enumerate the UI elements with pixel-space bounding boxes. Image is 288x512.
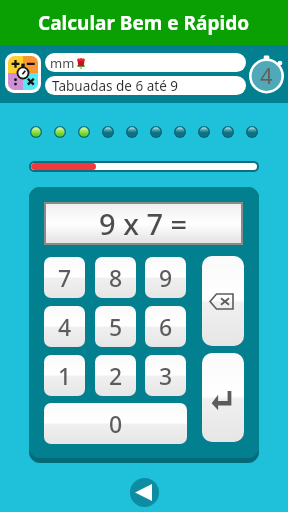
button[interactable]: 1 <box>44 355 85 396</box>
staticText: 6 <box>159 311 173 342</box>
staticText: 7 <box>58 262 72 293</box>
button[interactable]: 2 <box>95 355 136 396</box>
button[interactable]: 7 <box>44 257 85 298</box>
staticText: 3 <box>159 360 173 391</box>
staticText: 2 <box>109 360 123 391</box>
button[interactable]: 0 <box>44 403 187 444</box>
button[interactable]: 9 <box>145 257 186 298</box>
button[interactable]: mm <box>45 53 246 72</box>
button[interactable]: 3 <box>145 355 186 396</box>
staticText: 4 <box>260 60 273 90</box>
staticText: Calcular Bem e Rápido <box>38 10 250 36</box>
button[interactable]: 5 <box>95 306 136 347</box>
staticText: 9 x 7 = <box>99 204 188 243</box>
button[interactable]: 6 <box>145 306 186 347</box>
button[interactable]: Tabuadas de 6 até 9 <box>45 76 246 95</box>
button[interactable]: 4 <box>44 306 85 347</box>
button[interactable]: Enter <box>202 353 244 442</box>
staticText: 5 <box>109 311 123 342</box>
staticText: 0 <box>109 408 123 439</box>
staticText: 1 <box>58 360 72 391</box>
button[interactable]: 8 <box>95 257 136 298</box>
button[interactable]: Backspace <box>202 256 244 346</box>
staticText: 8 <box>109 262 123 293</box>
button[interactable]: Back <box>130 478 159 507</box>
staticText: Tabuadas de 6 até 9 <box>52 77 179 95</box>
staticText: mm <box>50 54 75 72</box>
staticText: 4 <box>58 311 72 342</box>
staticText: 9 <box>159 262 173 293</box>
